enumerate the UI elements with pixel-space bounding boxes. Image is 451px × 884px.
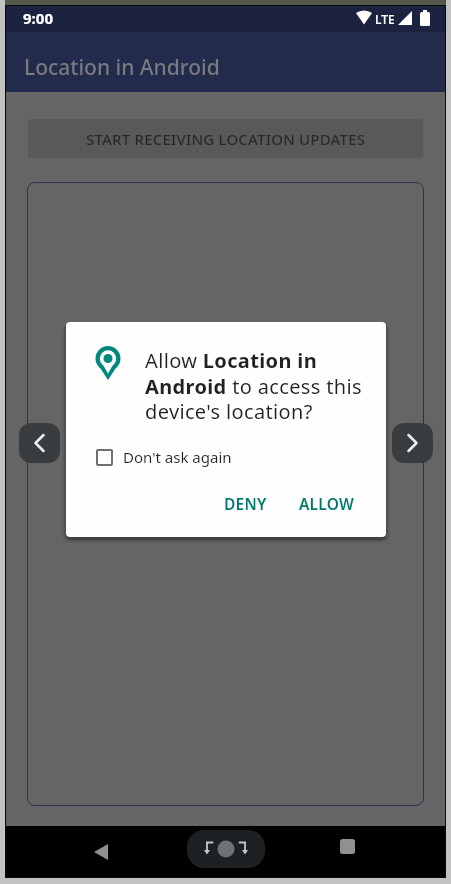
button[interactable] (19, 423, 60, 463)
staticText: ALLOW (299, 493, 354, 514)
button[interactable] (392, 423, 433, 463)
staticText: DENY (224, 493, 267, 514)
staticText: 9:00 (23, 8, 53, 28)
button[interactable]: DENY (216, 489, 275, 518)
staticText: Don't ask again (123, 447, 232, 467)
button[interactable] (81, 831, 123, 873)
staticText: LTE (375, 11, 395, 27)
staticText: START RECEIVING LOCATION UPDATES (86, 129, 366, 149)
button[interactable] (187, 830, 265, 868)
staticText: Location in Android (24, 53, 220, 82)
button[interactable]: Don't ask again (96, 447, 232, 467)
button[interactable] (327, 831, 369, 873)
button[interactable]: ALLOW (291, 489, 362, 518)
staticText: Allow Location in Android to access this… (145, 347, 362, 425)
button[interactable]: START RECEIVING LOCATION UPDATES (28, 119, 423, 158)
